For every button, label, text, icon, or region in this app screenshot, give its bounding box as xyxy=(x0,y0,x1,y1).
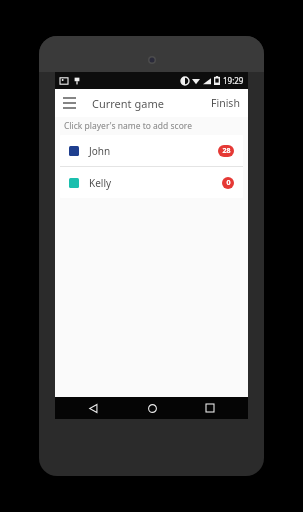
button[interactable]: Home xyxy=(132,397,172,419)
button[interactable]: Finish xyxy=(203,89,248,117)
staticText: 19:29 xyxy=(223,75,244,86)
staticText: Click player's name to add score xyxy=(64,120,192,132)
button[interactable]: Open navigation menu xyxy=(55,89,83,117)
button[interactable]: Kelly xyxy=(60,167,243,198)
button[interactable]: Back xyxy=(73,397,113,419)
staticText: John xyxy=(89,144,111,158)
staticText: 0 xyxy=(226,178,231,188)
staticText: Current game xyxy=(92,96,164,111)
button[interactable]: John xyxy=(60,135,243,166)
button[interactable]: Recent apps xyxy=(190,397,230,419)
staticText: Kelly xyxy=(89,176,112,190)
staticText: 28 xyxy=(222,146,231,156)
staticText: Finish xyxy=(211,96,240,110)
